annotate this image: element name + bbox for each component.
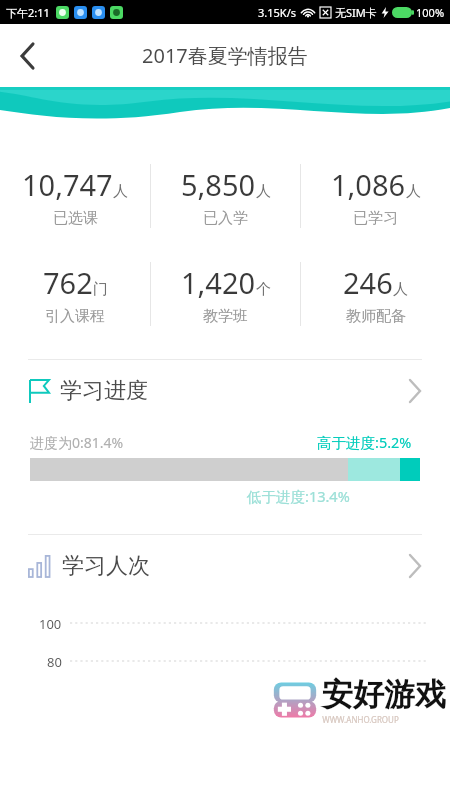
button[interactable]: 762 bbox=[0, 263, 150, 326]
staticText: 学习进度 bbox=[60, 377, 148, 405]
button[interactable]: 学习人次 bbox=[0, 535, 450, 597]
button[interactable]: Back bbox=[0, 29, 54, 83]
staticText: 人 bbox=[113, 182, 128, 201]
staticText: 已入学 bbox=[203, 209, 248, 228]
staticText: 3.15K/s bbox=[258, 5, 296, 20]
staticText: 下午2:11 bbox=[6, 5, 50, 20]
staticText: 1,086 bbox=[331, 165, 406, 204]
staticText: 个 bbox=[256, 280, 271, 299]
staticText: 2017春夏学情报告 bbox=[142, 42, 308, 69]
staticText: 10,747 bbox=[22, 165, 113, 204]
staticText: 学习人次 bbox=[62, 552, 150, 580]
other: More bbox=[408, 378, 422, 404]
staticText: 762 bbox=[43, 263, 93, 302]
staticText: WWW.ANHO.GROUP bbox=[322, 714, 399, 725]
staticText: 低于进度:13.4% bbox=[247, 486, 350, 506]
staticText: 人 bbox=[256, 182, 271, 201]
staticText: 已学习 bbox=[353, 209, 398, 228]
staticText: 引入课程 bbox=[45, 307, 105, 326]
staticText: 100 bbox=[39, 615, 62, 631]
button[interactable]: 5,850 bbox=[151, 165, 300, 228]
staticText: 5,850 bbox=[181, 165, 256, 204]
button[interactable]: 246 bbox=[301, 263, 450, 326]
staticText: 安好游戏 bbox=[322, 675, 446, 714]
staticText: 1,420 bbox=[181, 263, 256, 302]
other: More bbox=[408, 553, 422, 579]
staticText: 无SIM卡 bbox=[335, 5, 377, 20]
staticText: 人 bbox=[393, 280, 408, 299]
button[interactable]: 1,420 bbox=[151, 263, 300, 326]
staticText: 高于进度:5.2% bbox=[317, 432, 412, 452]
staticText: 246 bbox=[343, 263, 393, 302]
staticText: 已选课 bbox=[53, 209, 98, 228]
staticText: 教师配备 bbox=[346, 307, 406, 326]
staticText: 100% bbox=[416, 5, 445, 20]
staticText: 门 bbox=[93, 280, 108, 299]
staticText: 人 bbox=[406, 182, 421, 201]
button[interactable]: 1,086 bbox=[301, 165, 450, 228]
staticText: 教学班 bbox=[203, 307, 248, 326]
staticText: 进度为0:81.4% bbox=[30, 433, 124, 452]
staticText: 80 bbox=[47, 653, 62, 669]
button[interactable]: 学习进度 bbox=[0, 360, 450, 422]
button[interactable]: 10,747 bbox=[0, 165, 150, 228]
